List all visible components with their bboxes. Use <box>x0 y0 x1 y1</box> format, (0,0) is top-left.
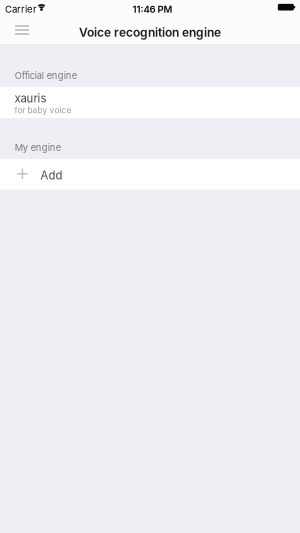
staticText: 11:46 PM <box>132 3 172 15</box>
button[interactable]: xauris <box>0 87 300 118</box>
button[interactable]: Add <box>0 159 300 189</box>
staticText: Add <box>41 169 63 182</box>
button[interactable]: Menu <box>8 17 37 42</box>
staticText: Official engine <box>15 70 77 81</box>
staticText: Carrier <box>5 3 37 15</box>
staticText: Voice recognition engine <box>79 25 221 40</box>
staticText: My engine <box>15 142 61 153</box>
staticText: for baby voice <box>15 105 72 115</box>
staticText: xauris <box>15 92 47 105</box>
